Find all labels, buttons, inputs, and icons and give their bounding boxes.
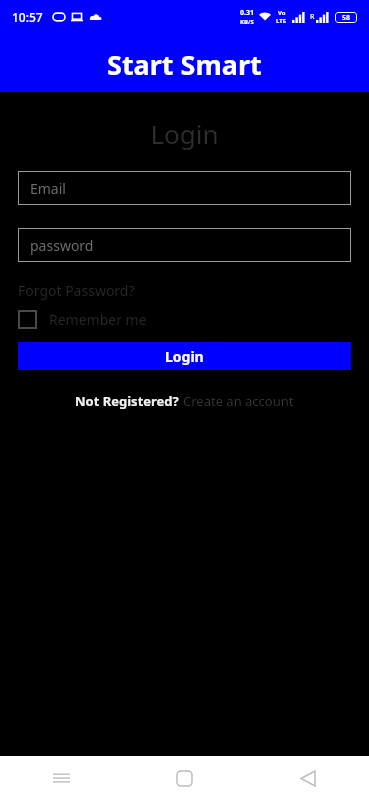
button[interactable]: Remember me — [18, 310, 147, 329]
staticText: Forgot Password? — [18, 281, 135, 300]
staticText: 0.31 — [240, 8, 254, 18]
staticText: R — [310, 12, 315, 22]
staticText: Email — [30, 179, 66, 198]
button[interactable]: Email — [18, 171, 351, 205]
staticText: Login — [0, 116, 369, 151]
staticText: password — [30, 236, 94, 255]
staticText: LTE — [276, 17, 287, 25]
button[interactable]: Recent apps — [0, 756, 123, 800]
staticText: Login — [165, 347, 204, 366]
button[interactable]: password — [18, 228, 351, 262]
button[interactable]: Create an account — [183, 392, 294, 410]
staticText: Not Registered? — [75, 392, 183, 410]
button[interactable]: Forgot Password? — [18, 281, 135, 300]
button[interactable]: Login — [18, 342, 351, 370]
staticText: 58 — [342, 13, 351, 23]
staticText: 10:57 — [12, 9, 43, 25]
staticText: Start Smart — [107, 46, 262, 83]
button[interactable]: Home — [123, 756, 246, 800]
staticText: Remember me — [49, 310, 147, 329]
staticText: Vo — [278, 9, 286, 17]
button[interactable]: Back — [246, 756, 369, 800]
staticText: Create an account — [183, 392, 294, 410]
staticText: KB/S — [240, 18, 254, 26]
